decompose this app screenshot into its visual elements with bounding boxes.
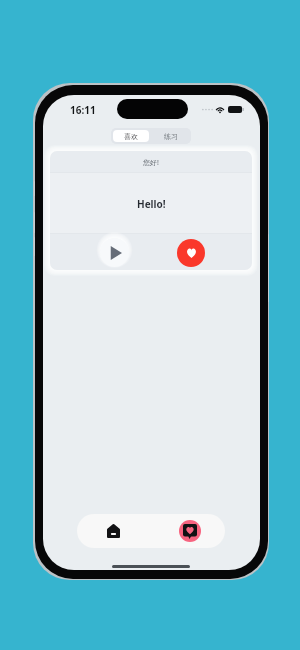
staticText: 练习 [164,132,178,141]
button[interactable]: 喜欢 [113,130,149,142]
button[interactable]: Play [100,238,129,267]
staticText: 16:11 [70,103,96,117]
staticText: 您好! [143,158,159,168]
button[interactable]: 您好! [50,151,252,270]
staticText: Hello! [137,197,166,211]
staticText: 喜欢 [124,132,138,141]
button[interactable]: Home [99,517,127,545]
button[interactable]: Favorite [177,239,205,267]
button[interactable]: Favorites [176,517,204,545]
button[interactable]: 练习 [151,128,191,144]
